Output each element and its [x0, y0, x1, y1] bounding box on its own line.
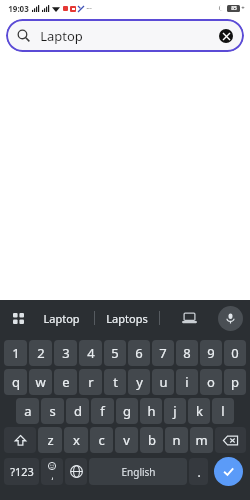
staticText: n — [172, 431, 181, 449]
button[interactable]: z — [38, 427, 62, 453]
button[interactable]: 0 — [224, 340, 246, 366]
staticText: y — [136, 373, 143, 391]
staticText: + — [241, 4, 245, 12]
staticText: , — [51, 470, 54, 481]
button[interactable]: Laptop — [29, 311, 94, 326]
button[interactable]: 7 — [152, 340, 174, 366]
staticText: k — [196, 402, 203, 420]
button[interactable]: n — [165, 427, 188, 453]
staticText: p — [231, 373, 239, 391]
staticText: . — [197, 464, 201, 480]
button[interactable]: 9 — [200, 340, 222, 366]
staticText: w — [35, 373, 46, 391]
button[interactable]: 1 — [4, 340, 27, 366]
staticText: x — [73, 431, 80, 449]
button[interactable]: h — [140, 398, 162, 424]
staticText: s — [49, 402, 56, 420]
button[interactable]: l — [212, 398, 234, 424]
staticText: 19:03 — [8, 3, 29, 14]
button[interactable]: i — [176, 369, 198, 395]
button[interactable]: p — [224, 369, 246, 395]
button[interactable]: s — [41, 398, 64, 424]
button[interactable]: w — [29, 369, 52, 395]
button[interactable]: 3 — [54, 340, 77, 366]
staticText: 4 — [87, 344, 95, 362]
staticText: f — [100, 402, 105, 420]
button[interactable]: t — [104, 369, 126, 395]
button[interactable]: y — [128, 369, 150, 395]
staticText: u — [159, 373, 168, 391]
button[interactable]: c — [90, 427, 113, 453]
button[interactable]: m — [190, 427, 213, 453]
button[interactable]: Laptops — [95, 311, 159, 326]
button[interactable]: r — [79, 369, 102, 395]
button[interactable]: Change language — [65, 458, 87, 485]
button[interactable]: 8 — [176, 340, 198, 366]
button[interactable]: a — [16, 398, 39, 424]
button[interactable]: 4 — [79, 340, 102, 366]
button[interactable]: Laptop — [6, 19, 244, 52]
button[interactable]: . — [189, 458, 208, 485]
button[interactable]: f — [91, 398, 114, 424]
button[interactable]: Search — [214, 457, 243, 486]
button[interactable]: g — [116, 398, 138, 424]
staticText: English — [121, 465, 156, 479]
staticText: Laptops — [106, 311, 148, 326]
staticText: q — [12, 373, 20, 391]
button[interactable]: q — [4, 369, 27, 395]
staticText: d — [74, 402, 82, 420]
button[interactable]: Toolbar — [7, 307, 29, 329]
staticText: a — [24, 402, 32, 420]
button[interactable]: v — [115, 427, 138, 453]
staticText: 0 — [231, 344, 239, 362]
button[interactable]: Emoji and comma — [41, 458, 63, 485]
staticText: ?123 — [10, 464, 34, 479]
button[interactable]: u — [152, 369, 174, 395]
staticText: ··· — [86, 4, 92, 14]
staticText: 85 — [231, 5, 237, 12]
staticText: 5 — [111, 344, 119, 362]
staticText: t — [113, 373, 118, 391]
staticText: 1 — [12, 344, 20, 362]
button[interactable]: 5 — [104, 340, 126, 366]
button[interactable]: 2 — [29, 340, 52, 366]
staticText: 2 — [37, 344, 45, 362]
button[interactable]: k — [188, 398, 210, 424]
staticText: o — [207, 373, 215, 391]
button[interactable]: Voice input — [218, 306, 243, 331]
button[interactable]: d — [66, 398, 89, 424]
button[interactable]: o — [200, 369, 222, 395]
button[interactable]: b — [140, 427, 163, 453]
staticText: Laptop — [43, 311, 80, 326]
staticText: 9 — [207, 344, 215, 362]
staticText: c — [98, 431, 105, 449]
staticText: v — [123, 431, 130, 449]
staticText: z — [47, 431, 54, 449]
button[interactable]: Laptop emoji — [160, 312, 218, 324]
staticText: e — [62, 373, 70, 391]
staticText: i — [185, 373, 189, 391]
button[interactable]: 6 — [128, 340, 150, 366]
staticText: 3 — [62, 344, 70, 362]
staticText: r — [88, 373, 94, 391]
button[interactable]: English — [89, 458, 187, 485]
staticText: g — [123, 402, 131, 420]
staticText: h — [147, 402, 156, 420]
staticText: Laptop — [40, 27, 83, 45]
button[interactable]: Backspace — [215, 427, 246, 453]
staticText: 6 — [135, 344, 143, 362]
staticText: b — [148, 431, 156, 449]
staticText: j — [173, 402, 177, 420]
button[interactable]: e — [54, 369, 77, 395]
staticText: 8 — [183, 344, 191, 362]
button[interactable]: j — [164, 398, 186, 424]
staticText: l — [221, 402, 225, 420]
button[interactable]: x — [64, 427, 88, 453]
staticText: 7 — [159, 344, 167, 362]
staticText: m — [195, 431, 208, 449]
button[interactable]: Clear search — [219, 29, 233, 43]
button[interactable]: Shift — [4, 427, 36, 453]
button[interactable]: ?123 — [4, 458, 39, 485]
